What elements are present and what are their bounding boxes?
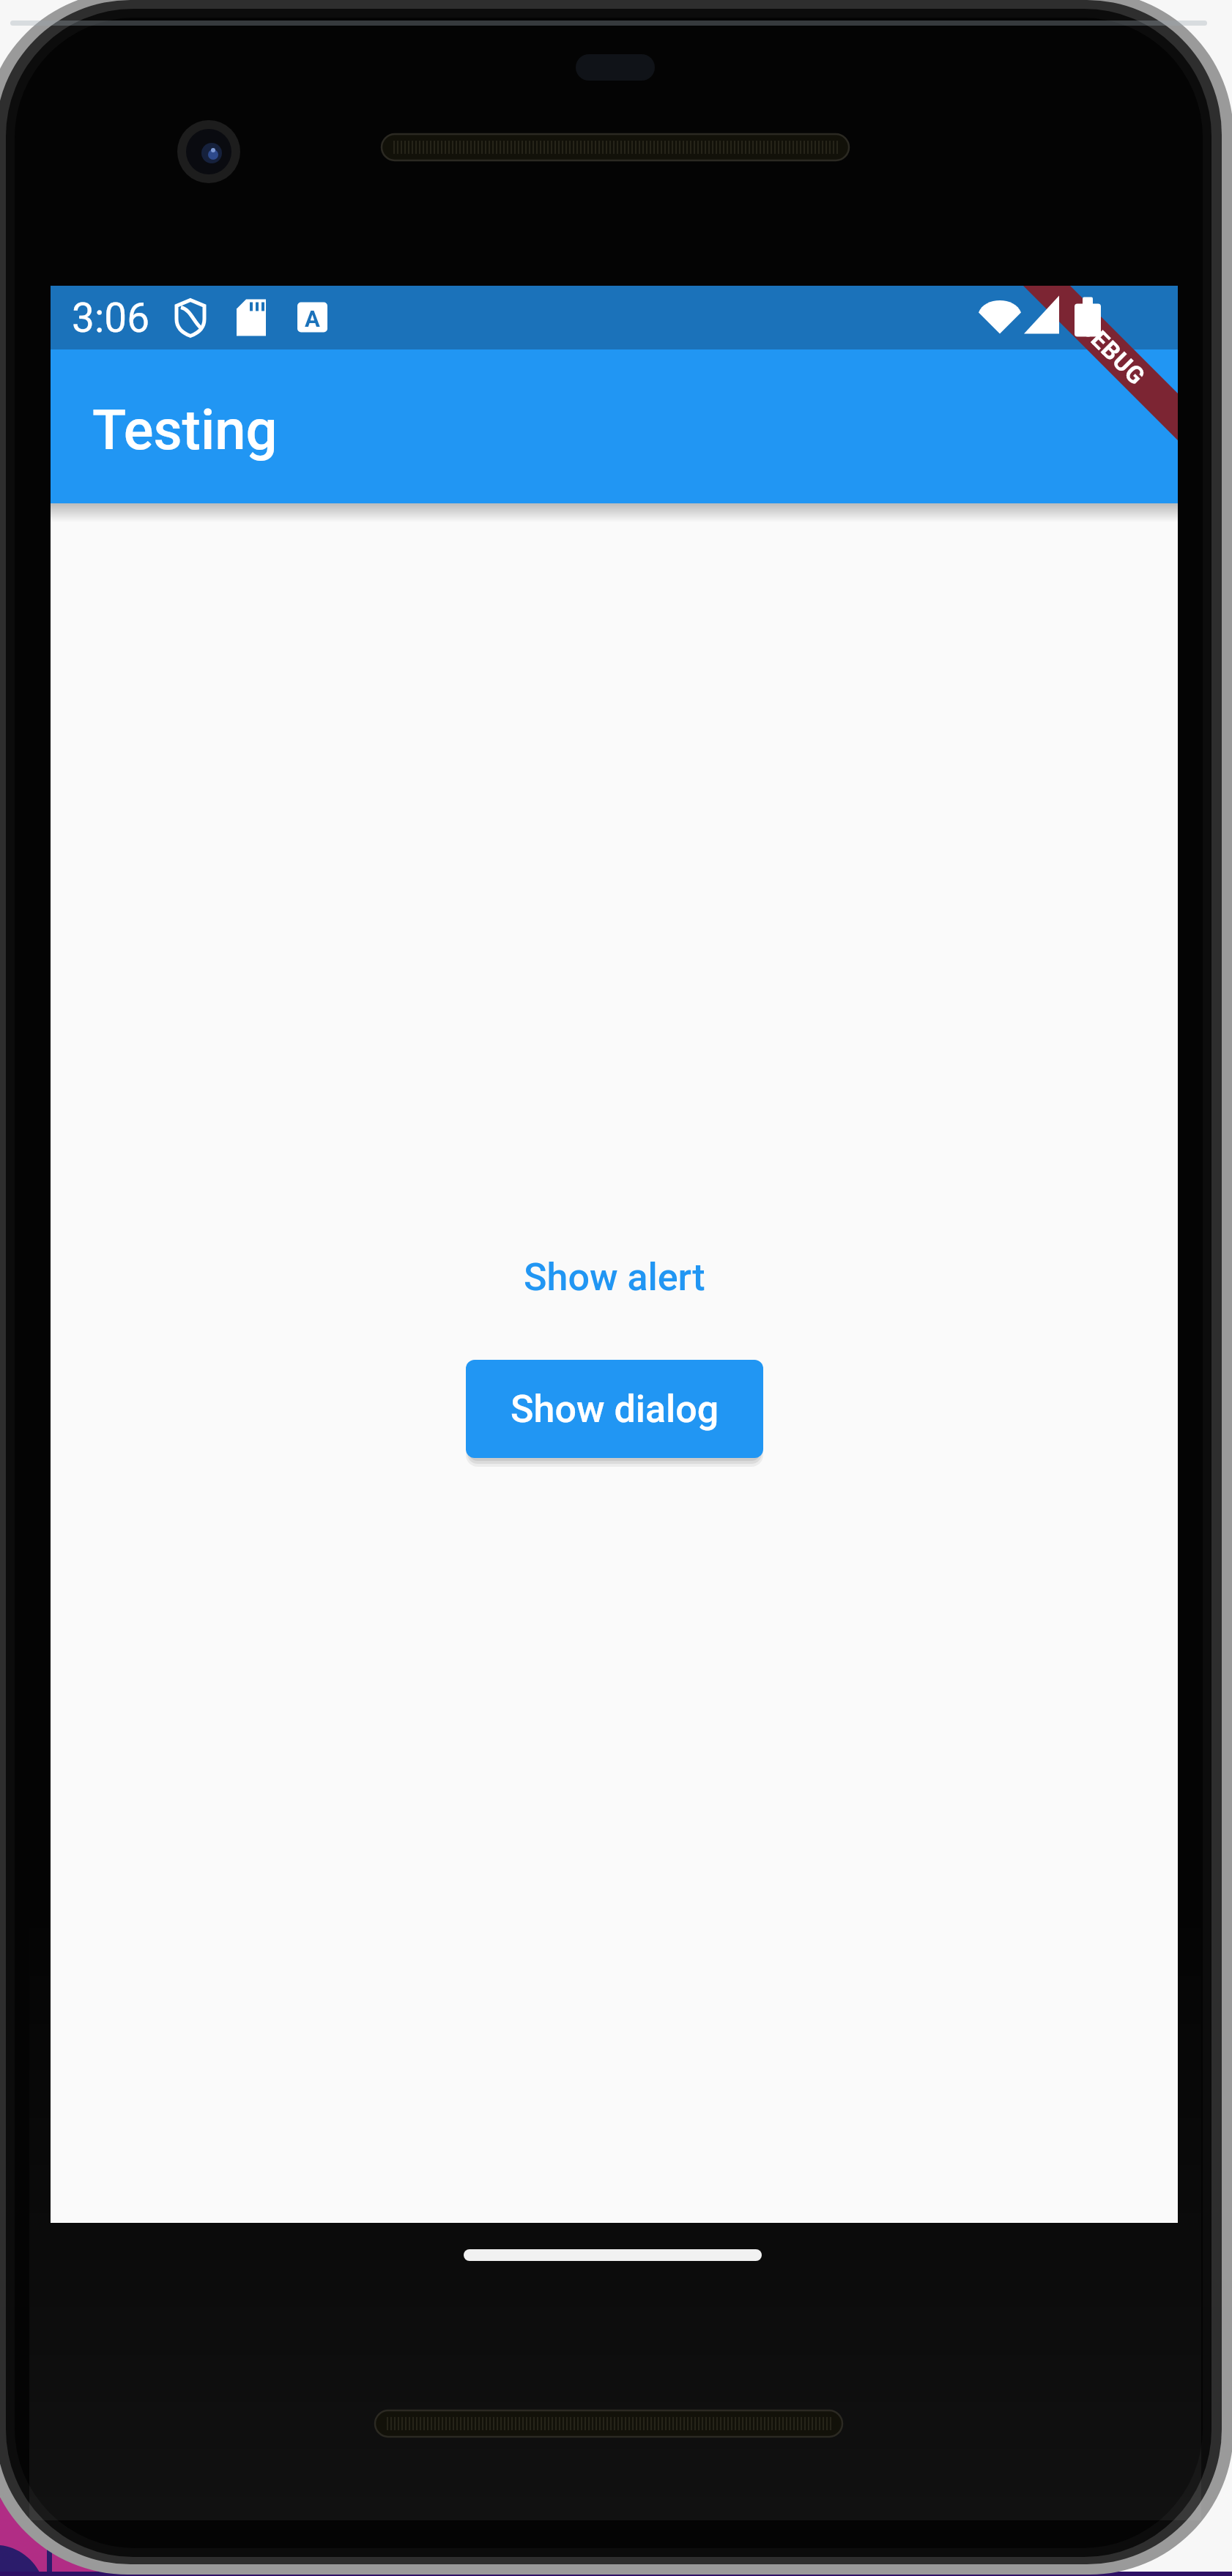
button[interactable]: Show dialog	[466, 1360, 763, 1458]
staticText: A	[305, 306, 320, 332]
staticText: 3:06	[72, 295, 150, 341]
staticText: Show alert	[524, 1255, 705, 1300]
staticText: DEBUG	[1074, 313, 1152, 391]
staticText: Show dialog	[511, 1387, 719, 1432]
staticText: Testing	[92, 397, 278, 462]
button[interactable]: Show alert	[506, 1239, 723, 1316]
button[interactable]: Home	[439, 2229, 786, 2281]
